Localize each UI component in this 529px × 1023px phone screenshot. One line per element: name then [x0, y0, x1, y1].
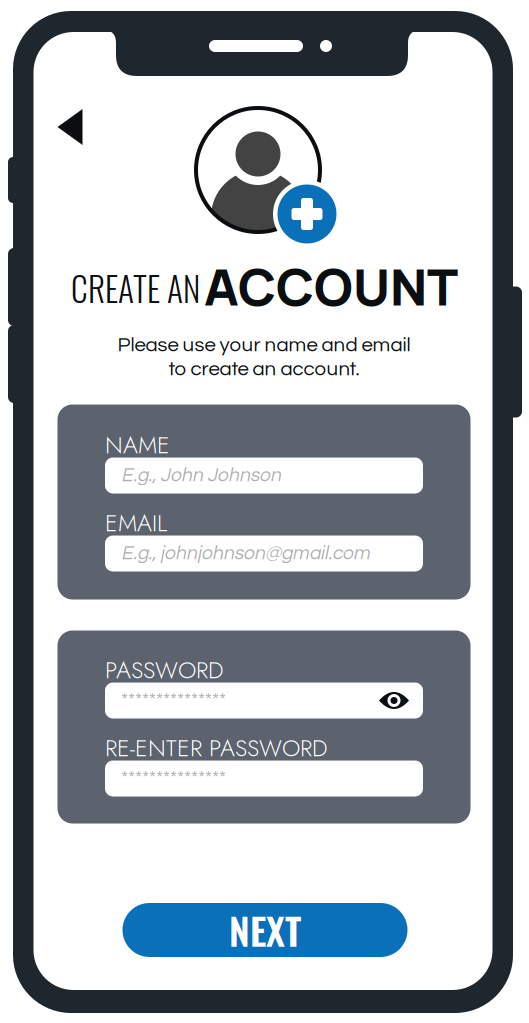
staticText: E.g., John Johnson	[121, 466, 281, 485]
button[interactable]: NEXT	[122, 903, 407, 957]
staticText: RE-ENTER PASSWORD	[105, 731, 328, 765]
staticText: Please use your name and email	[117, 334, 410, 355]
staticText: NAME	[105, 428, 170, 462]
staticText: ***************	[121, 769, 226, 788]
staticText: ***************	[121, 691, 226, 710]
button[interactable]: E.g., johnjohnson@gmail.com	[105, 535, 423, 571]
button[interactable]: Add profile photo	[195, 107, 340, 252]
staticText: PASSWORD	[105, 653, 224, 687]
staticText: ACCOUNT	[204, 251, 458, 321]
button[interactable]: Back	[56, 108, 83, 146]
staticText: CREATE AN	[71, 263, 200, 313]
staticText: E.g., johnjohnson@gmail.com	[121, 544, 370, 563]
staticText: NEXT	[229, 902, 301, 958]
staticText: EMAIL	[105, 506, 167, 540]
button[interactable]: ***************	[105, 682, 423, 718]
button[interactable]: ***************	[105, 760, 423, 796]
staticText: to create an account.	[168, 358, 359, 379]
button[interactable]: E.g., John Johnson	[105, 457, 423, 493]
